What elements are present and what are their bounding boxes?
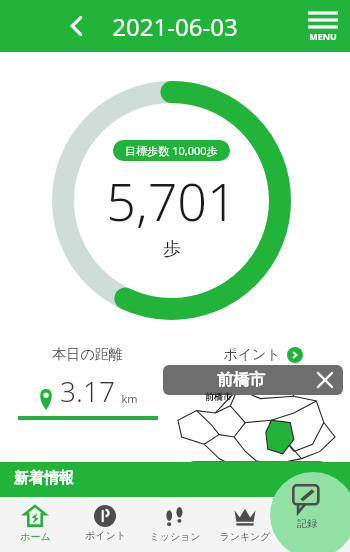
button[interactable]: 目標歩数 10,000歩 xyxy=(125,143,218,158)
staticText: 目標歩数 10,000歩 xyxy=(125,143,218,158)
staticText: ランキング xyxy=(219,530,271,543)
button[interactable]: ポイント xyxy=(70,495,140,552)
staticText: 歩 xyxy=(163,238,181,261)
staticText: 記録 xyxy=(297,517,317,530)
staticText: 次の拠点まで7,226歩 xyxy=(194,463,320,481)
staticText: ミッション xyxy=(149,530,201,543)
staticText: 2021-06-03 xyxy=(112,10,238,43)
staticText: ポイント xyxy=(85,529,126,542)
button[interactable]: 新着情報 xyxy=(0,462,350,495)
staticText: ホーム xyxy=(20,530,51,543)
button[interactable]: ミッション xyxy=(140,495,210,552)
staticText: 3.17 xyxy=(60,372,115,410)
staticText: 前橋市 xyxy=(169,370,313,390)
button[interactable]: ランキング xyxy=(210,495,280,552)
button[interactable]: 記録 xyxy=(270,472,350,552)
button[interactable]: 次の拠点まで7,226歩 xyxy=(194,463,320,481)
staticText: 前橋市 xyxy=(205,391,232,402)
staticText: 新着情報 xyxy=(14,469,74,488)
staticText: MENU xyxy=(309,30,337,42)
staticText: 本日の距離 xyxy=(52,346,123,364)
staticText: 5,701 xyxy=(106,165,237,236)
staticText: km xyxy=(121,391,138,406)
button[interactable]: Back xyxy=(62,11,92,41)
button[interactable]: ポイント xyxy=(175,346,350,364)
button[interactable]: 本日の距離 xyxy=(0,346,175,420)
button[interactable]: Close xyxy=(313,368,337,392)
button[interactable]: Menu xyxy=(308,11,338,42)
staticText: ポイント xyxy=(223,346,281,364)
button[interactable]: ホーム xyxy=(0,495,70,552)
